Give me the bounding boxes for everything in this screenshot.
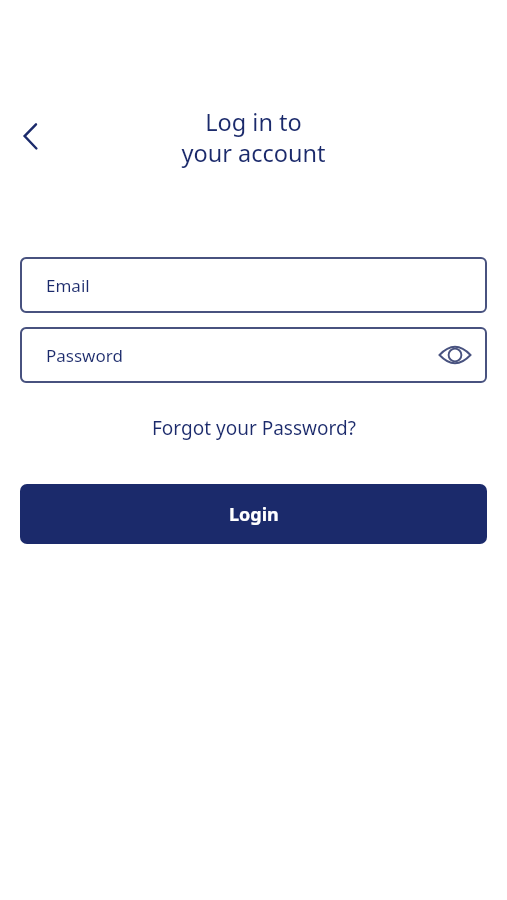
button[interactable]	[8, 112, 52, 156]
button[interactable]: Login	[20, 484, 487, 544]
button[interactable]	[437, 337, 473, 373]
staticText: Password	[46, 344, 123, 367]
button[interactable]: Forgot your Password?	[152, 415, 356, 441]
staticText: Login	[229, 502, 279, 527]
staticText: Log in to your account	[0, 106, 507, 168]
button[interactable]: Password	[20, 327, 487, 383]
button[interactable]: Email	[20, 257, 487, 313]
staticText: Email	[46, 274, 90, 297]
